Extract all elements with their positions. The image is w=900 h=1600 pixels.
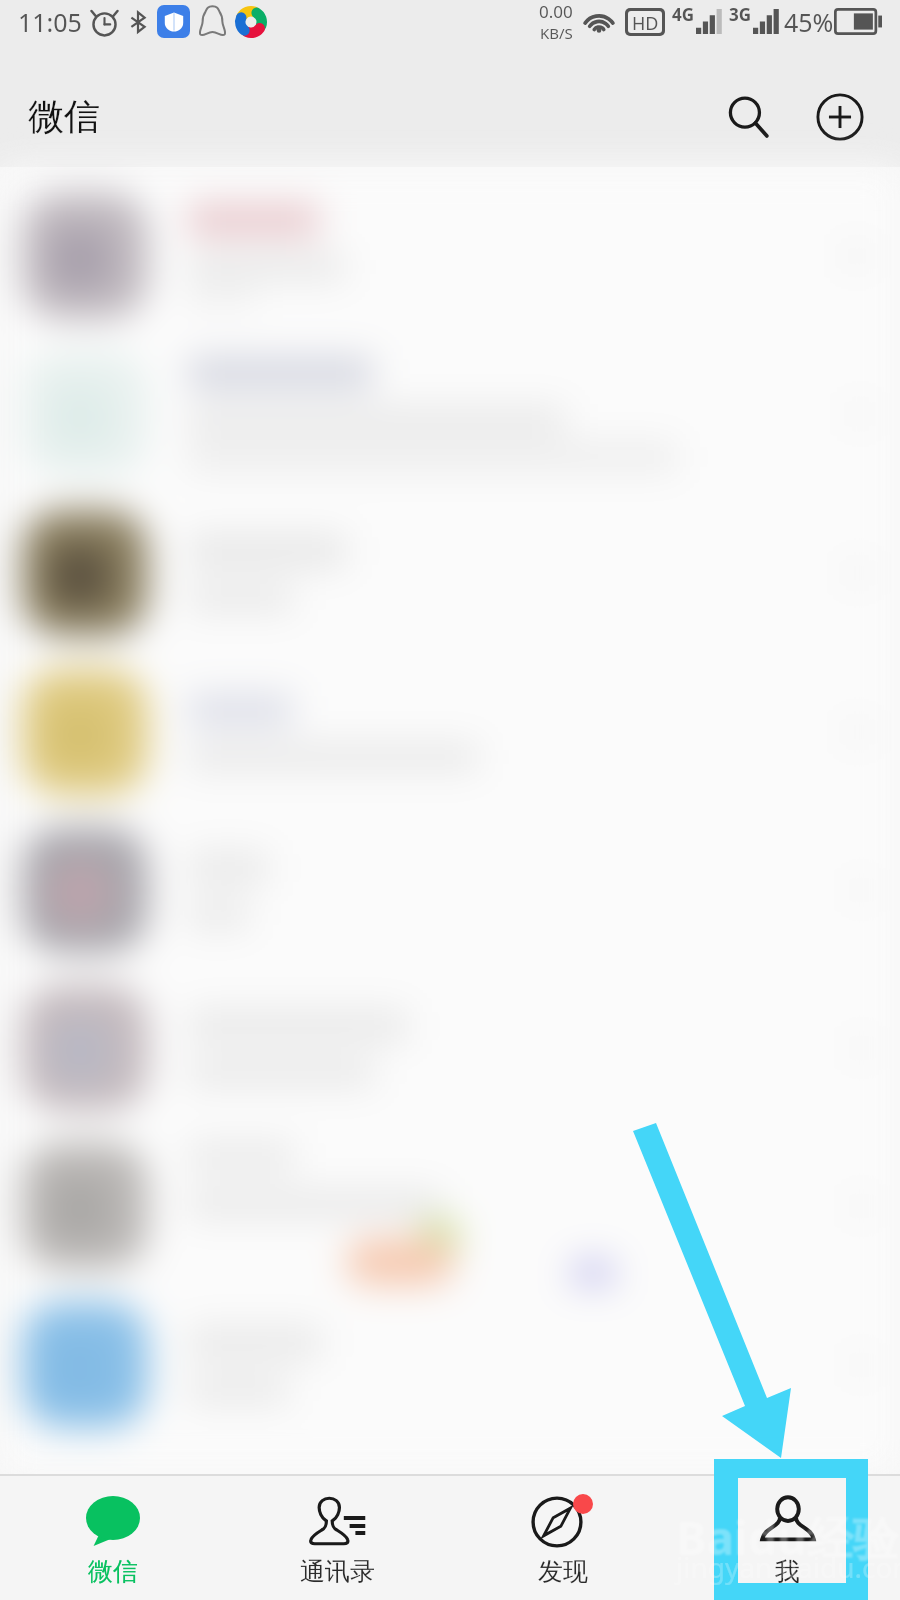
button[interactable] bbox=[0, 1127, 900, 1285]
staticText: jingyan.baidu.com bbox=[676, 1548, 900, 1586]
staticText: 微信 bbox=[28, 94, 100, 139]
staticText: 通讯录 bbox=[300, 1556, 375, 1587]
button[interactable]: Add bbox=[808, 85, 872, 149]
button[interactable]: 微信 bbox=[0, 1482, 225, 1595]
staticText: 3G bbox=[729, 3, 752, 26]
staticText: 发现 bbox=[538, 1556, 588, 1587]
button[interactable] bbox=[0, 177, 900, 335]
button[interactable] bbox=[0, 653, 900, 811]
button[interactable] bbox=[0, 1285, 900, 1445]
button[interactable] bbox=[0, 811, 900, 969]
button[interactable] bbox=[0, 969, 900, 1127]
button[interactable]: 发现 bbox=[450, 1482, 675, 1595]
staticText: 45% bbox=[784, 5, 834, 39]
button[interactable]: Search bbox=[716, 85, 780, 149]
staticText: 我 bbox=[775, 1556, 800, 1587]
staticText: 4G bbox=[672, 3, 695, 26]
staticText: Baidu经验 bbox=[676, 1506, 899, 1569]
button[interactable]: 我 bbox=[675, 1482, 900, 1595]
staticText: KB/S bbox=[540, 23, 573, 43]
staticText: 0.00 bbox=[539, 0, 573, 23]
button[interactable] bbox=[0, 335, 900, 493]
staticText: 11:05 bbox=[18, 5, 82, 39]
staticText: 微信 bbox=[88, 1556, 138, 1587]
staticText: HD bbox=[632, 11, 659, 33]
button[interactable]: 通讯录 bbox=[225, 1482, 450, 1595]
button[interactable] bbox=[0, 493, 900, 653]
